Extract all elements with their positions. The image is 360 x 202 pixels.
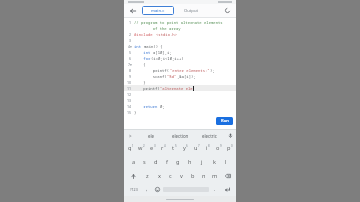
staticText: r	[161, 144, 164, 152]
staticText: s	[143, 158, 146, 166]
button[interactable]: l	[220, 155, 232, 169]
staticText: 8	[208, 144, 210, 148]
staticText: i	[206, 144, 208, 152]
staticText: f	[166, 158, 168, 166]
staticText: 0;	[160, 104, 165, 109]
staticText: ele	[148, 133, 155, 139]
staticText: int	[134, 50, 153, 55]
staticText: printf(	[134, 68, 170, 73]
staticText: scanf(	[134, 74, 167, 79]
staticText: "enter elements:"	[170, 68, 210, 73]
staticText: 7	[198, 144, 200, 148]
staticText: ,&a[i]);	[177, 74, 196, 79]
staticText: b	[191, 172, 195, 180]
staticText: t	[172, 144, 175, 152]
button[interactable]: r	[158, 141, 169, 155]
staticText: n	[202, 172, 206, 180]
button[interactable]: ?123	[125, 183, 142, 196]
staticText: g	[176, 158, 180, 166]
staticText: p	[227, 144, 231, 152]
staticText: 6	[129, 56, 132, 61]
staticText: .	[214, 186, 216, 193]
button[interactable]: Backspace	[220, 169, 235, 183]
button[interactable]: a	[128, 155, 139, 169]
button[interactable]: s	[139, 155, 150, 169]
button[interactable]: election	[166, 130, 195, 141]
button[interactable]: q	[125, 141, 136, 155]
staticText: Run	[221, 118, 229, 124]
staticText: 11	[127, 86, 132, 91]
staticText: }	[134, 110, 137, 115]
button[interactable]: ele	[136, 130, 166, 141]
staticText: h	[188, 158, 192, 166]
button[interactable]: j	[196, 155, 208, 169]
button[interactable]: .	[210, 183, 220, 196]
staticText: main.c	[151, 8, 165, 14]
button[interactable]: n	[198, 169, 209, 183]
button[interactable]: i	[202, 141, 213, 155]
staticText: Output	[184, 8, 199, 14]
button[interactable]: h	[184, 155, 196, 169]
staticText: x	[158, 172, 161, 180]
staticText: 1	[132, 144, 134, 148]
staticText: 9	[220, 144, 222, 148]
button[interactable]: m	[209, 169, 220, 183]
staticText: ?123	[130, 187, 138, 192]
staticText: 4	[164, 144, 166, 148]
staticText: );	[210, 68, 215, 73]
staticText: ,	[146, 186, 148, 193]
button[interactable]: u	[191, 141, 202, 155]
staticText: k	[213, 158, 216, 166]
staticText: o	[216, 144, 220, 152]
button[interactable]: c	[165, 169, 176, 183]
button[interactable]: Emoji	[152, 183, 162, 196]
staticText: w	[138, 144, 143, 152]
staticText: "%d"	[167, 74, 177, 79]
button[interactable]: z	[141, 169, 153, 183]
button[interactable]: Output	[177, 6, 205, 15]
staticText: 2	[143, 144, 145, 148]
button[interactable]: o	[213, 141, 224, 155]
staticText: #include	[134, 32, 156, 37]
button[interactable]: d	[150, 155, 161, 169]
staticText: }	[134, 80, 146, 85]
button[interactable]: Dark mode	[222, 5, 233, 16]
button[interactable]: y	[180, 141, 191, 155]
button[interactable]: Shift	[125, 169, 141, 183]
staticText: 13	[127, 98, 132, 103]
button[interactable]: v	[176, 169, 187, 183]
button[interactable]: g	[172, 155, 184, 169]
button[interactable]: More suggestions	[124, 130, 136, 141]
button[interactable]: k	[208, 155, 220, 169]
button[interactable]: t	[169, 141, 180, 155]
button[interactable]: Enter	[220, 183, 235, 196]
staticText: 3	[129, 38, 132, 43]
staticText: printf(	[134, 86, 160, 91]
staticText: z	[146, 172, 149, 180]
staticText: 0	[231, 144, 233, 148]
button[interactable]: x	[153, 169, 165, 183]
button[interactable]: e	[147, 141, 158, 155]
staticText: "alternate ele	[160, 86, 193, 91]
button[interactable]: Voice input	[224, 130, 236, 141]
staticText: 9	[129, 74, 132, 79]
staticText: y	[183, 144, 186, 152]
button[interactable]: f	[161, 155, 172, 169]
button[interactable]: ,	[142, 183, 152, 196]
button[interactable]: Run	[216, 117, 233, 125]
staticText: election	[172, 133, 189, 139]
staticText: {	[134, 62, 146, 67]
button[interactable]: p	[224, 141, 235, 155]
staticText: 4▾	[128, 44, 132, 49]
button[interactable]: b	[187, 169, 198, 183]
staticText: v	[180, 172, 183, 180]
staticText: 5	[129, 50, 132, 55]
button[interactable]: main.c	[142, 6, 174, 15]
button[interactable]: Back	[127, 5, 138, 16]
staticText: // program to print alternate elements	[134, 20, 223, 25]
button[interactable]: w	[136, 141, 147, 155]
button[interactable]: electric	[195, 130, 224, 141]
staticText: e	[150, 144, 154, 152]
staticText: 10	[127, 80, 132, 85]
